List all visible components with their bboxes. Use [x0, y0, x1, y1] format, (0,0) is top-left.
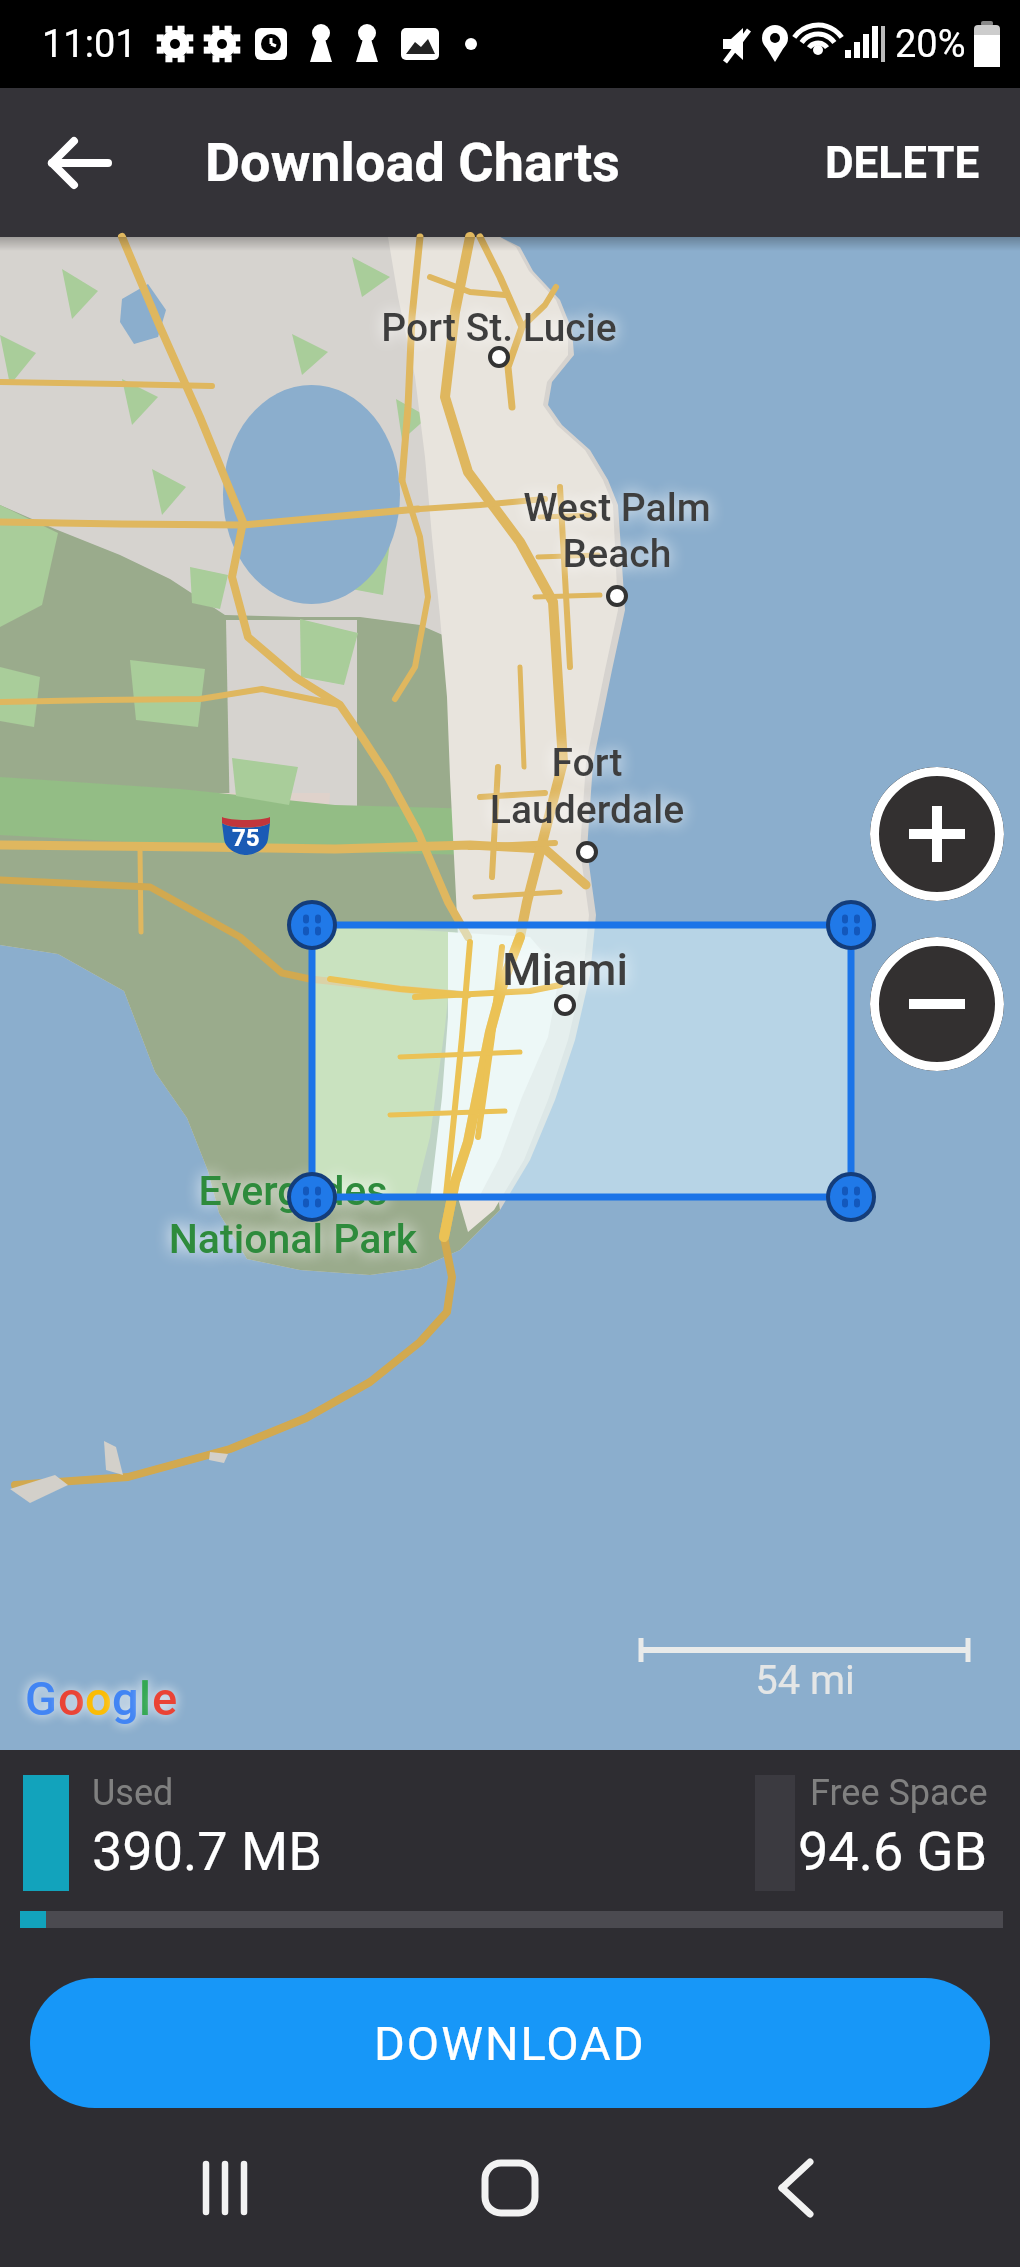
staticText: Free Space [810, 1772, 988, 1814]
staticText: Port St. Lucie [359, 305, 639, 351]
staticText: West Palm Beach [515, 485, 719, 577]
button[interactable] [870, 767, 1004, 901]
staticText: 54 mi [745, 1657, 865, 1704]
staticText: Used [92, 1772, 174, 1814]
staticText: o [58, 1671, 85, 1726]
staticText: 20% [895, 22, 966, 67]
button[interactable]: DOWNLOAD [30, 1978, 990, 2108]
staticText: G [25, 1671, 58, 1726]
staticText: DOWNLOAD [374, 2016, 646, 2071]
staticText: o [85, 1671, 112, 1726]
staticText: Download Charts [205, 131, 620, 194]
staticText: e [152, 1671, 178, 1726]
staticText: Fort Lauderdale [487, 740, 687, 833]
staticText: 390.7 MB [92, 1820, 322, 1883]
staticText: 75 [232, 824, 260, 852]
button[interactable] [450, 2128, 570, 2248]
staticText: Miami [465, 943, 665, 996]
staticText: l [139, 1671, 152, 1726]
staticText: 11:01 [42, 22, 137, 67]
button[interactable] [165, 2128, 285, 2248]
button[interactable] [870, 937, 1004, 1071]
button[interactable] [40, 123, 120, 203]
staticText: 94.6 GB [798, 1820, 988, 1883]
button[interactable]: DELETE [817, 129, 988, 197]
button[interactable] [735, 2128, 855, 2248]
staticText: g [112, 1671, 139, 1726]
staticText: Evergl des National Park [168, 1167, 418, 1263]
staticText: DELETE [825, 137, 980, 189]
